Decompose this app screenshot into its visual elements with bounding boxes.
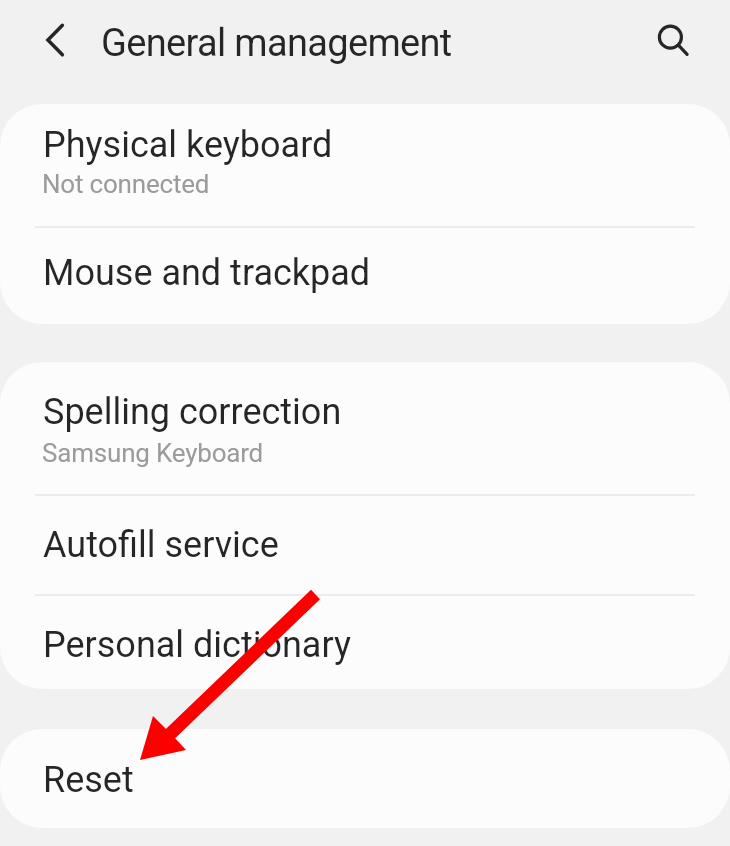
button[interactable]: Personal dictionary — [0, 594, 730, 689]
staticText: Personal dictionary — [43, 624, 352, 666]
staticText: Spelling correction — [43, 391, 342, 433]
button[interactable]: Autofill service — [0, 494, 730, 594]
staticText: Reset — [43, 759, 134, 801]
button[interactable]: Navigate up — [19, 12, 75, 68]
staticText: Samsung Keyboard — [42, 438, 264, 468]
staticText: General management — [101, 21, 452, 66]
button[interactable]: Physical keyboard — [0, 104, 730, 226]
button[interactable]: Mouse and trackpad — [0, 226, 730, 324]
button[interactable]: Search — [642, 9, 698, 65]
staticText: Physical keyboard — [43, 124, 333, 166]
button[interactable]: Spelling correction — [0, 362, 730, 494]
staticText: Autofill service — [43, 524, 279, 566]
staticText: Mouse and trackpad — [43, 252, 371, 294]
staticText: Not connected — [42, 169, 210, 199]
button[interactable]: Reset — [0, 729, 730, 828]
